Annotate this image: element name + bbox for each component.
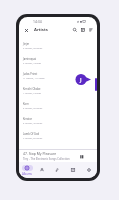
button[interactable]: Pause — [77, 152, 86, 161]
button[interactable]: Fast scroll J — [75, 74, 91, 85]
button[interactable]: 47. Stop My Pleasure — [23, 150, 96, 162]
button[interactable]: More options — [87, 26, 95, 34]
button[interactable]: Jamiroquai — [23, 53, 97, 68]
staticText: 2 Albums, 4 Songs — [23, 62, 42, 65]
button[interactable]: Close — [22, 26, 30, 34]
staticText: Tiny - The Electronic Songs Collection — [23, 157, 70, 161]
button[interactable]: Sort order — [79, 26, 87, 34]
staticText: J — [80, 76, 82, 83]
button[interactable]: Search — [71, 26, 79, 34]
button[interactable] — [65, 167, 81, 173]
staticText: 11 Albums, 111 Songs — [23, 77, 45, 80]
staticText: 7 Albums, 56 Songs — [23, 137, 43, 140]
button[interactable] — [49, 167, 65, 173]
staticText: 5 Albums, 30 Songs — [23, 107, 43, 110]
staticText: 6 Albums, 45 Songs — [23, 122, 43, 125]
staticText: Jinjer — [23, 42, 30, 46]
staticText: 47. Stop My Pleasure — [23, 151, 57, 156]
button[interactable]: Albums — [19, 165, 34, 176]
staticText: Judas Priest — [23, 72, 38, 76]
staticText: Jamiroquai — [23, 57, 37, 61]
button[interactable] — [34, 167, 49, 173]
staticText: Lamb Of God — [23, 132, 40, 136]
button[interactable]: Lamb Of God — [23, 128, 97, 143]
staticText: Albums — [22, 172, 32, 176]
staticText: 14:34 — [33, 19, 42, 24]
button[interactable]: Kreator — [23, 113, 97, 128]
button[interactable]: Judas Priest — [23, 68, 97, 83]
staticText: Artists — [34, 27, 48, 33]
staticText: Korn — [23, 102, 29, 106]
button[interactable]: Korn — [23, 98, 97, 113]
staticText: Kenichi Okabe — [23, 87, 41, 91]
button[interactable] — [81, 167, 97, 173]
staticText: 3 Albums, 38 Songs — [23, 47, 43, 50]
staticText: 1 Albums, 3 Songs — [23, 92, 42, 95]
button[interactable]: Kenichi Okabe — [23, 83, 97, 98]
button[interactable]: Jinjer — [23, 38, 97, 53]
staticText: Kreator — [23, 117, 33, 121]
